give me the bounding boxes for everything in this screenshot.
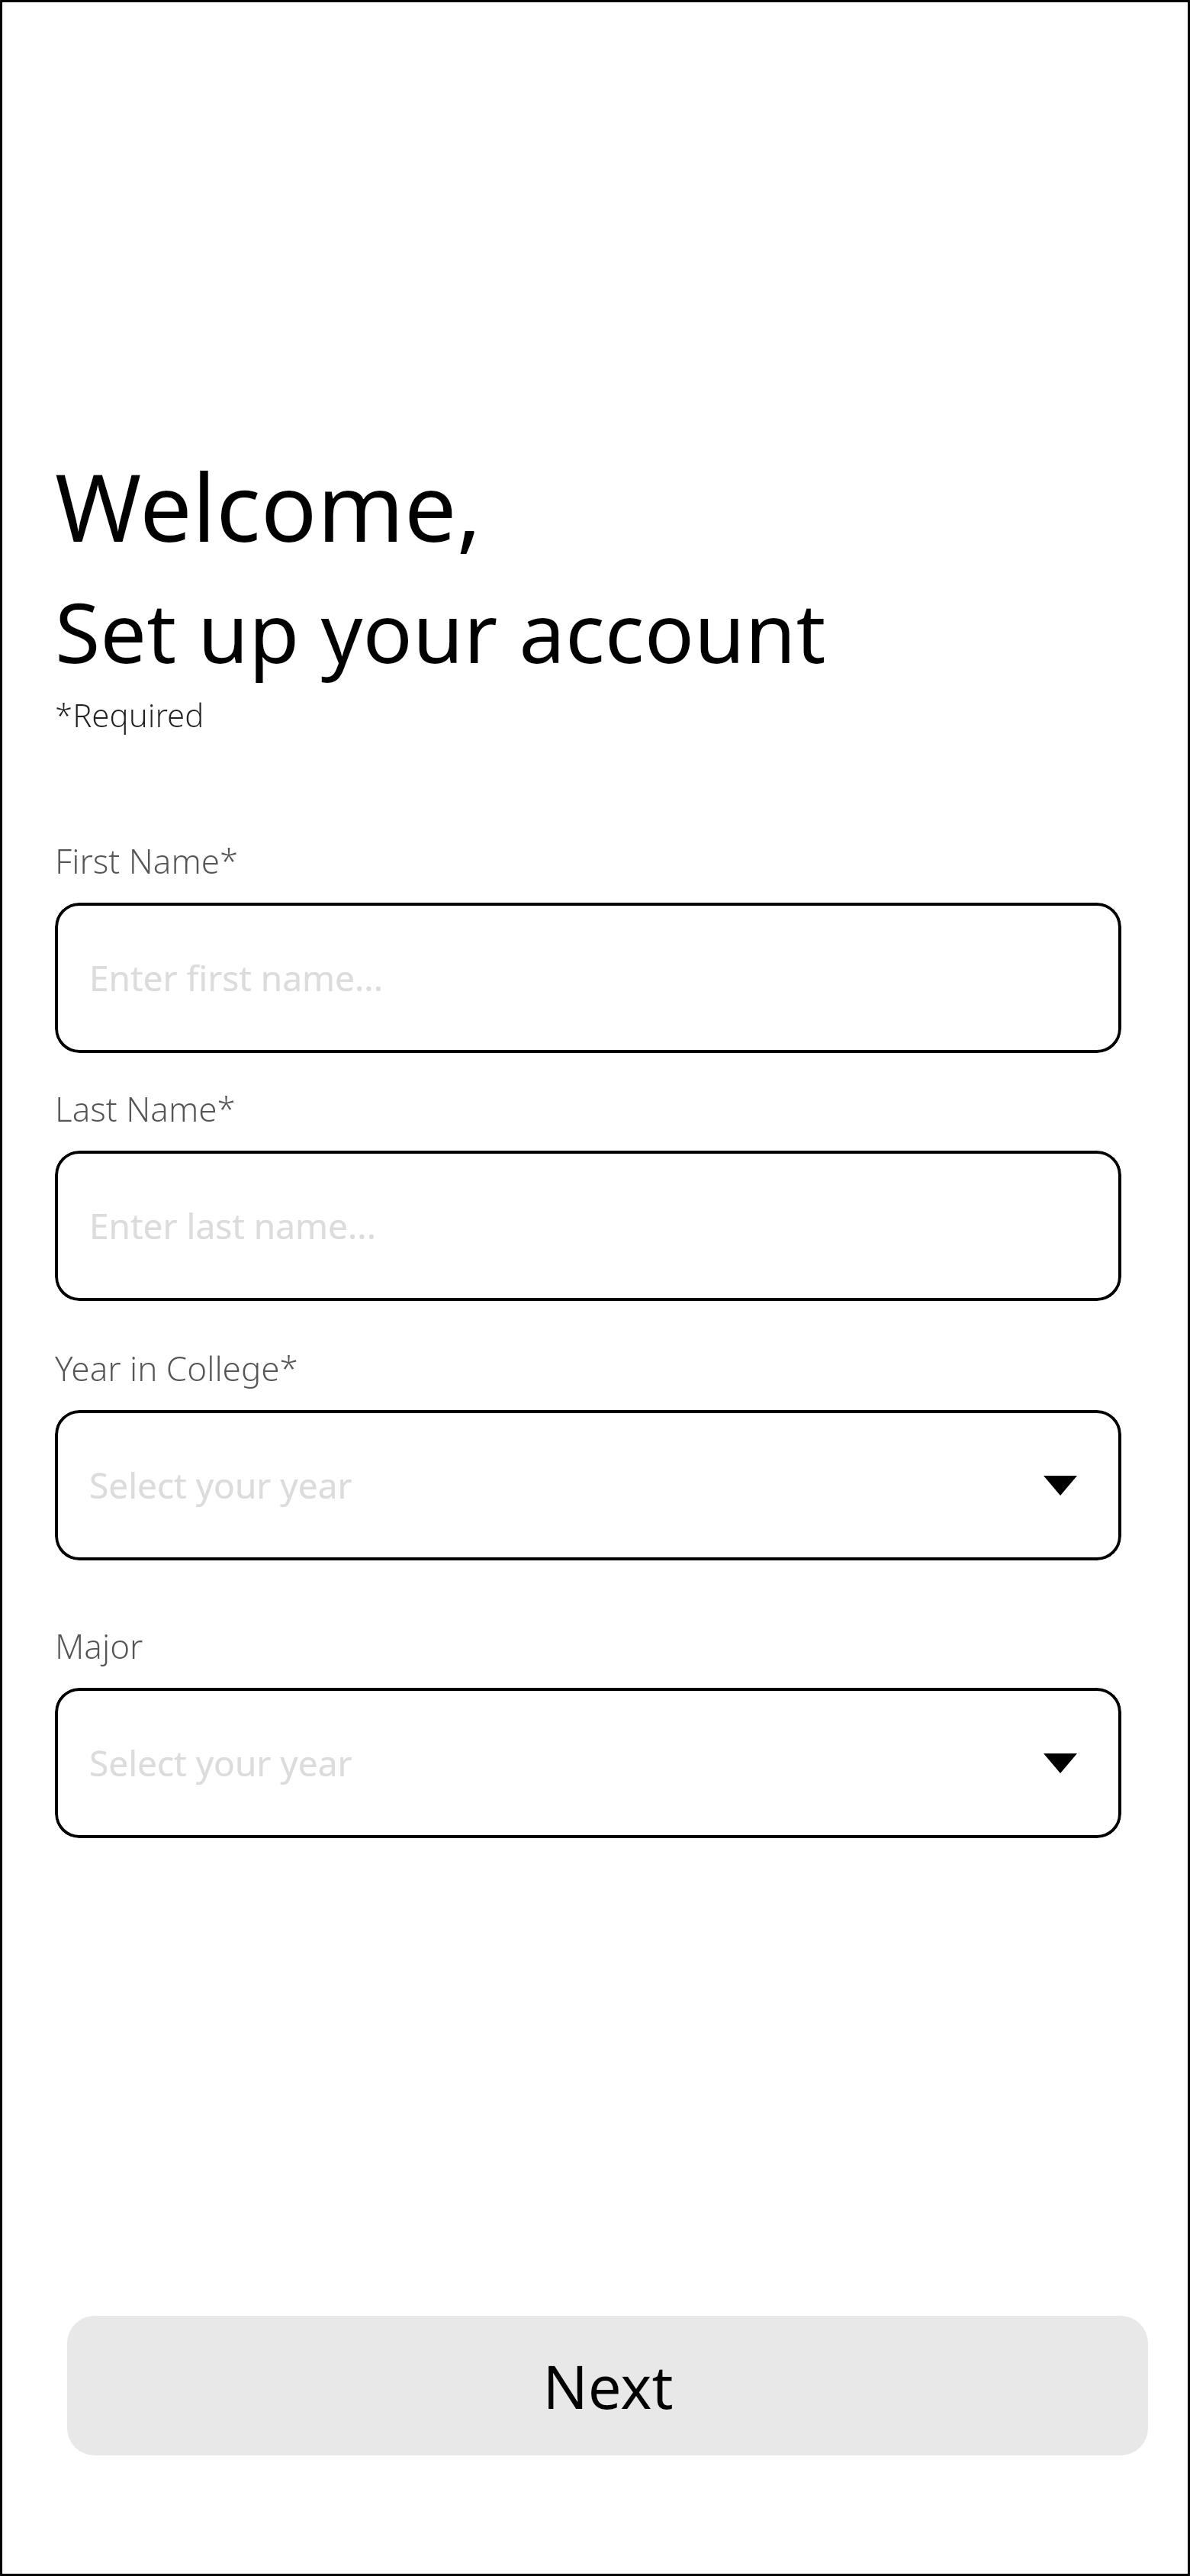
staticText: Welcome, xyxy=(55,443,482,569)
staticText: Enter first name... xyxy=(89,954,383,1002)
staticText: Select your year xyxy=(89,1739,352,1787)
staticText: Major xyxy=(55,1623,143,1669)
staticText: Last Name* xyxy=(55,1086,236,1132)
button[interactable]: Last Name xyxy=(55,1151,1121,1301)
staticText: Year in College* xyxy=(55,1345,298,1391)
button[interactable]: Next xyxy=(67,2316,1148,2455)
staticText: Set up your account xyxy=(55,575,826,687)
button[interactable]: First Name xyxy=(55,903,1121,1053)
staticText: Select your year xyxy=(89,1461,352,1509)
staticText: Enter last name... xyxy=(89,1202,376,1250)
button[interactable]: Major xyxy=(55,1688,1121,1838)
staticText: First Name* xyxy=(55,838,239,884)
button[interactable]: Year in College xyxy=(55,1410,1121,1560)
staticText: *Required xyxy=(55,693,204,736)
staticText: Next xyxy=(542,2346,674,2426)
